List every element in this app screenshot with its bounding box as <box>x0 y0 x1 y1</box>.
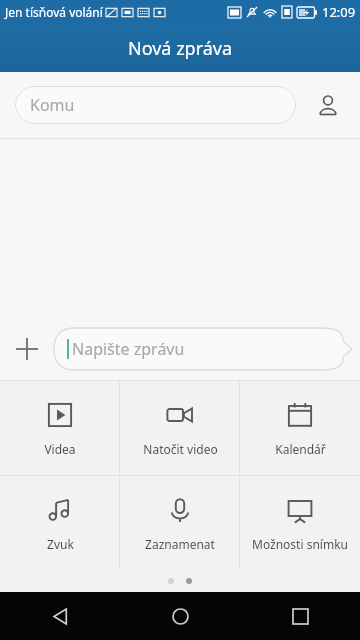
staticText: Nová zpráva <box>128 36 233 61</box>
staticText: Zaznamenat <box>145 536 215 552</box>
staticText: 12:09 <box>322 3 356 21</box>
staticText: Možnosti snímku <box>252 536 348 552</box>
staticText: Napište zprávu <box>72 338 185 360</box>
button[interactable]: Napište zprávu <box>54 328 352 370</box>
button[interactable]: Videa <box>0 381 120 475</box>
button[interactable]: Zvuk <box>0 476 120 570</box>
staticText: Komu <box>30 94 75 116</box>
staticText: Zvuk <box>47 536 74 552</box>
button[interactable]: Vybrat kontakt <box>306 83 350 127</box>
staticText: Natočit video <box>143 441 218 457</box>
staticText: Jen tísňová volání <box>5 4 103 20</box>
button[interactable]: Poslední aplikace <box>240 592 360 640</box>
button[interactable]: Natočit video <box>120 381 240 475</box>
button[interactable]: Zaznamenat <box>120 476 240 570</box>
button[interactable]: Komu <box>15 86 296 124</box>
staticText: Kalendář <box>275 441 326 457</box>
button[interactable]: Přidat přílohu <box>4 326 50 372</box>
button[interactable]: Domů <box>120 592 240 640</box>
button[interactable]: Zpět <box>0 592 120 640</box>
button[interactable]: Kalendář <box>240 381 360 475</box>
button[interactable]: Možnosti snímku <box>240 476 360 570</box>
staticText: Videa <box>44 441 76 457</box>
